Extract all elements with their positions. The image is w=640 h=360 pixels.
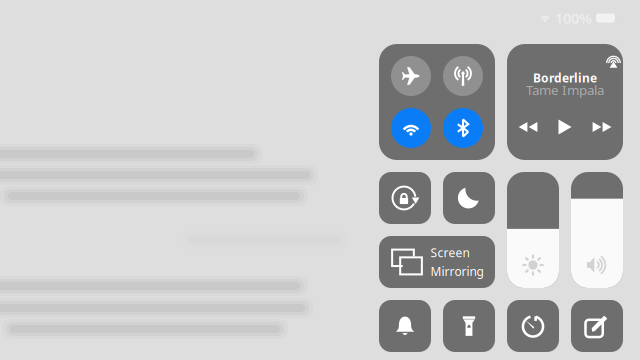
button[interactable]: Volume bbox=[571, 172, 623, 288]
button[interactable]: Previous bbox=[517, 119, 539, 135]
button[interactable]: Notes bbox=[571, 300, 623, 352]
button[interactable]: Airplane Mode bbox=[391, 56, 431, 96]
button[interactable]: Play bbox=[554, 119, 576, 135]
button[interactable]: Timer bbox=[507, 300, 559, 352]
button[interactable]: Borderline bbox=[507, 44, 623, 160]
staticText: Mirroring bbox=[430, 263, 483, 279]
staticText: Borderline bbox=[533, 70, 597, 86]
button[interactable]: Flashlight bbox=[443, 300, 495, 352]
button[interactable]: Bluetooth bbox=[443, 108, 483, 148]
staticText: Tame Impala bbox=[526, 81, 604, 99]
button[interactable]: Screen bbox=[379, 236, 495, 288]
button[interactable]: Alarm bbox=[379, 300, 431, 352]
staticText: Screen bbox=[430, 245, 469, 260]
button[interactable]: AirPlay bbox=[603, 51, 624, 72]
button[interactable]: Brightness bbox=[507, 172, 559, 288]
button[interactable]: Rotation Lock bbox=[379, 172, 431, 224]
button[interactable]: Cellular Data bbox=[443, 56, 483, 96]
staticText: 100% bbox=[555, 8, 592, 28]
button[interactable]: Do Not Disturb bbox=[443, 172, 495, 224]
button[interactable]: Next bbox=[591, 119, 613, 135]
button[interactable]: Wi-Fi bbox=[391, 108, 431, 148]
